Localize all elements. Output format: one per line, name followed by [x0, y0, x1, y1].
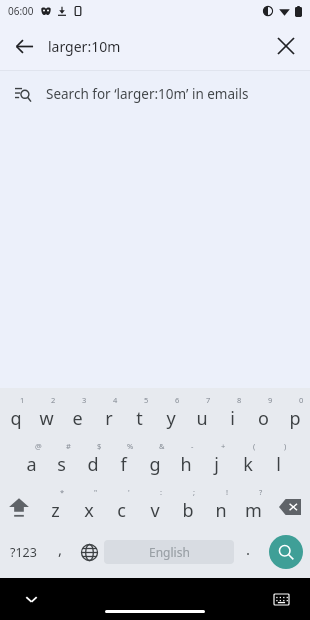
- staticText: r: [105, 406, 113, 431]
- button[interactable]: #: [46, 438, 77, 484]
- button[interactable]: Search for ‘larger:10m’ in emails: [0, 71, 310, 117]
- staticText: f: [120, 452, 127, 477]
- staticText: Search for ‘larger:10m’ in emails: [46, 85, 249, 103]
- staticText: ?123: [10, 544, 37, 561]
- button[interactable]: Back: [0, 22, 48, 70]
- button[interactable]: -: [170, 438, 201, 484]
- button[interactable]: 7: [186, 392, 217, 438]
- button[interactable]: 6: [155, 392, 186, 438]
- button[interactable]: ;: [171, 484, 204, 530]
- staticText: ": [94, 487, 98, 497]
- staticText: (: [253, 441, 256, 451]
- button[interactable]: 4: [93, 392, 124, 438]
- button[interactable]: Shift: [0, 484, 38, 530]
- staticText: 6: [175, 395, 180, 405]
- staticText: l: [276, 452, 281, 477]
- staticText: j: [214, 452, 219, 477]
- button[interactable]: ): [263, 438, 294, 484]
- staticText: m: [245, 498, 262, 523]
- staticText: e: [72, 406, 83, 431]
- staticText: ?: [259, 487, 263, 497]
- staticText: ;: [193, 487, 196, 497]
- button[interactable]: :: [138, 484, 171, 530]
- staticText: h: [180, 452, 192, 477]
- button[interactable]: @: [16, 438, 46, 484]
- staticText: 0: [299, 395, 304, 405]
- staticText: 3: [82, 395, 87, 405]
- button[interactable]: Switch keyboard: [268, 586, 294, 612]
- staticText: ': [128, 487, 130, 497]
- staticText: +: [221, 441, 226, 451]
- staticText: *: [60, 487, 65, 497]
- staticText: p: [289, 406, 301, 431]
- button[interactable]: ": [72, 484, 105, 530]
- button[interactable]: *: [38, 484, 72, 530]
- staticText: i: [230, 406, 235, 431]
- staticText: a: [26, 452, 37, 477]
- staticText: w: [39, 406, 54, 431]
- staticText: c: [117, 498, 126, 523]
- button[interactable]: 3: [62, 392, 93, 438]
- staticText: 9: [268, 395, 273, 405]
- staticText: t: [136, 406, 143, 431]
- staticText: ): [284, 441, 287, 451]
- button[interactable]: Search: [269, 535, 303, 569]
- staticText: n: [215, 498, 227, 523]
- staticText: q: [10, 406, 22, 431]
- staticText: g: [149, 452, 161, 477]
- staticText: 06:00: [8, 4, 34, 18]
- staticText: 5: [144, 395, 149, 405]
- button[interactable]: 2: [31, 392, 62, 438]
- button[interactable]: !: [204, 484, 237, 530]
- button[interactable]: .: [234, 530, 262, 574]
- button[interactable]: Hide keyboard: [18, 586, 44, 612]
- staticText: -: [191, 441, 194, 451]
- staticText: larger:10m: [48, 37, 262, 56]
- staticText: &: [159, 441, 165, 451]
- staticText: o: [258, 406, 269, 431]
- button[interactable]: ': [105, 484, 138, 530]
- staticText: :: [160, 487, 163, 497]
- staticText: 1: [20, 395, 25, 405]
- staticText: d: [87, 452, 99, 477]
- button[interactable]: 9: [248, 392, 279, 438]
- staticText: %: [127, 441, 134, 451]
- staticText: @: [35, 441, 42, 451]
- staticText: u: [196, 406, 208, 431]
- button[interactable]: (: [232, 438, 263, 484]
- button[interactable]: Clear search: [262, 22, 310, 70]
- button[interactable]: %: [108, 438, 139, 484]
- staticText: $: [97, 441, 102, 451]
- button[interactable]: 5: [124, 392, 155, 438]
- staticText: s: [57, 452, 66, 477]
- button[interactable]: +: [201, 438, 232, 484]
- button[interactable]: &: [139, 438, 170, 484]
- staticText: ,: [58, 539, 63, 559]
- staticText: 2: [51, 395, 56, 405]
- button[interactable]: 8: [217, 392, 248, 438]
- button[interactable]: ,: [46, 530, 74, 574]
- staticText: y: [166, 406, 176, 431]
- staticText: English: [149, 544, 190, 560]
- staticText: k: [243, 452, 253, 477]
- button[interactable]: English: [104, 540, 234, 564]
- staticText: !: [226, 487, 229, 497]
- staticText: 7: [206, 395, 211, 405]
- button[interactable]: ?: [237, 484, 270, 530]
- staticText: #: [66, 441, 71, 451]
- staticText: v: [150, 498, 160, 523]
- button[interactable]: ?123: [0, 530, 46, 574]
- staticText: 8: [237, 395, 242, 405]
- button[interactable]: Change language: [74, 530, 104, 574]
- staticText: 4: [113, 395, 118, 405]
- staticText: x: [84, 498, 94, 523]
- button[interactable]: 0: [279, 392, 310, 438]
- button[interactable]: 1: [0, 392, 31, 438]
- button[interactable]: Backspace: [270, 484, 310, 530]
- staticText: .: [246, 539, 251, 559]
- button[interactable]: $: [77, 438, 108, 484]
- staticText: b: [182, 498, 194, 523]
- staticText: z: [51, 498, 60, 523]
